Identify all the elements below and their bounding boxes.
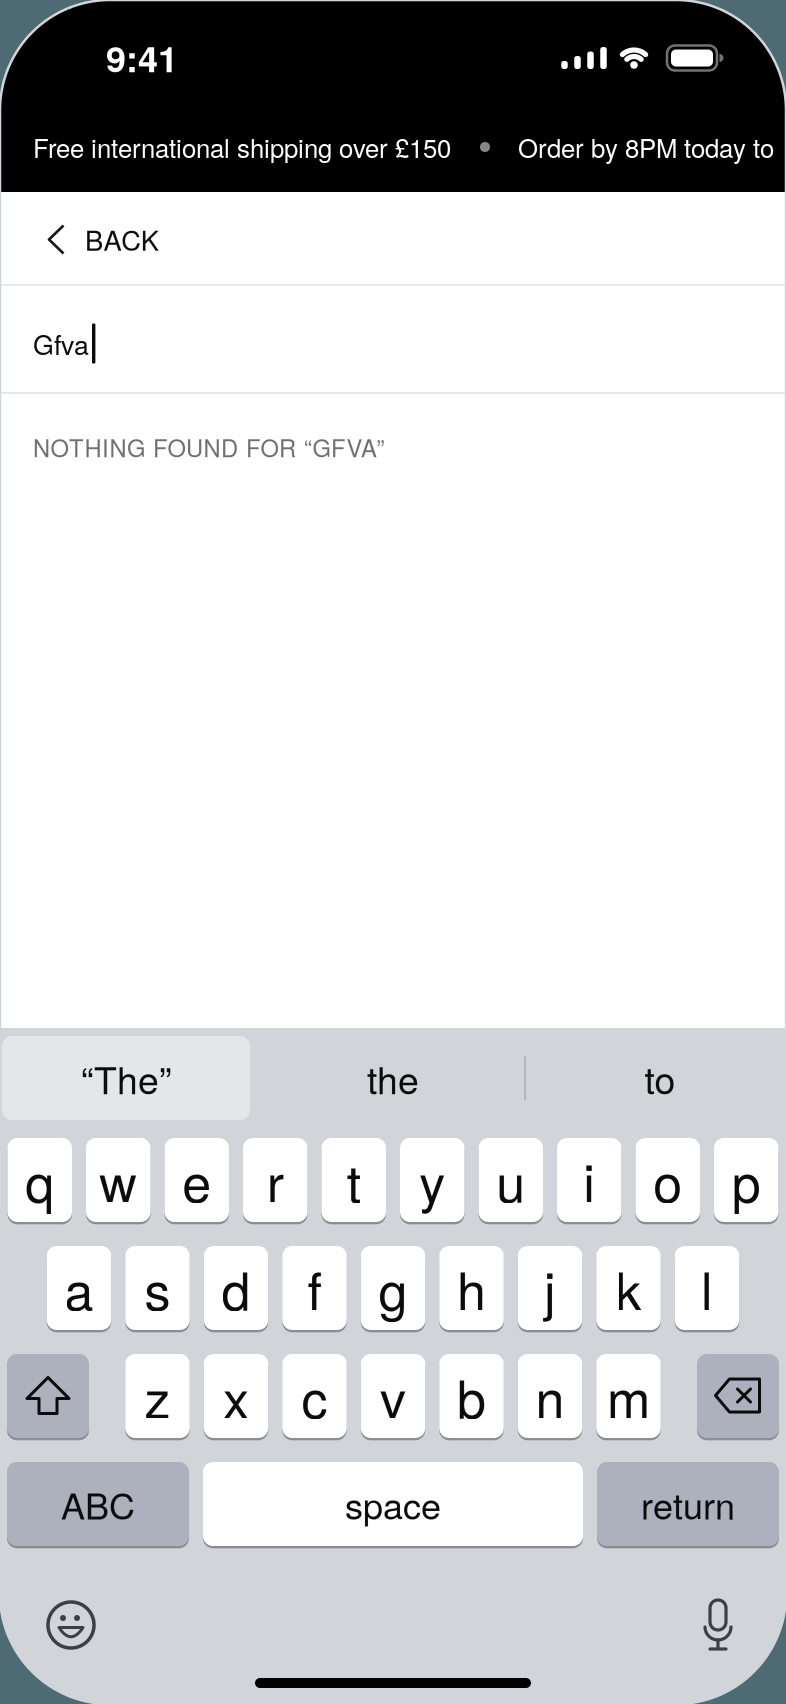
- button[interactable]: x: [204, 1354, 268, 1438]
- staticText: i: [583, 1143, 595, 1217]
- button[interactable]: g: [361, 1246, 425, 1330]
- button[interactable]: w: [86, 1138, 150, 1222]
- button[interactable]: space: [203, 1462, 583, 1546]
- staticText: d: [221, 1251, 250, 1325]
- staticText: “The”: [81, 1051, 171, 1105]
- staticText: g: [378, 1251, 407, 1325]
- staticText: Gfva: [33, 324, 89, 363]
- staticText: t: [347, 1143, 361, 1217]
- button[interactable]: o: [635, 1138, 700, 1222]
- staticText: o: [653, 1143, 682, 1217]
- button[interactable]: return: [597, 1462, 779, 1546]
- button[interactable]: y: [400, 1138, 464, 1222]
- staticText: r: [267, 1143, 284, 1217]
- button[interactable]: m: [596, 1354, 661, 1438]
- button[interactable]: k: [596, 1246, 661, 1330]
- button[interactable]: f: [282, 1246, 347, 1330]
- button[interactable]: h: [439, 1246, 504, 1330]
- button[interactable]: s: [125, 1246, 190, 1330]
- button[interactable]: Back: [0, 192, 159, 286]
- staticText: b: [457, 1359, 486, 1433]
- staticText: ABC: [61, 1478, 135, 1530]
- staticText: the: [367, 1051, 419, 1105]
- staticText: m: [607, 1359, 650, 1433]
- button[interactable]: p: [714, 1138, 778, 1222]
- staticText: to: [644, 1051, 675, 1105]
- staticText: p: [732, 1143, 761, 1217]
- button[interactable]: l: [675, 1246, 739, 1330]
- button[interactable]: “The”: [2, 1036, 250, 1120]
- staticText: h: [457, 1251, 486, 1325]
- staticText: u: [496, 1143, 525, 1217]
- button[interactable]: q: [7, 1138, 72, 1222]
- staticText: k: [615, 1251, 641, 1325]
- staticText: s: [144, 1251, 170, 1325]
- button[interactable]: ABC: [7, 1462, 189, 1546]
- button[interactable]: Delete: [697, 1354, 779, 1438]
- button[interactable]: Shift: [7, 1354, 89, 1438]
- button[interactable]: n: [518, 1354, 582, 1438]
- staticText: j: [544, 1251, 556, 1325]
- button[interactable]: t: [321, 1138, 386, 1222]
- button[interactable]: z: [125, 1354, 190, 1438]
- staticText: y: [419, 1143, 445, 1217]
- staticText: l: [701, 1251, 713, 1325]
- button[interactable]: r: [243, 1138, 307, 1222]
- staticText: NOTHING FOUND FOR “GFVA”: [33, 430, 384, 464]
- staticText: v: [380, 1359, 406, 1433]
- staticText: a: [64, 1251, 93, 1325]
- button[interactable]: Dictation: [703, 1599, 733, 1651]
- button[interactable]: to: [536, 1036, 784, 1120]
- staticText: c: [301, 1359, 327, 1433]
- button[interactable]: u: [478, 1138, 543, 1222]
- staticText: q: [25, 1143, 54, 1217]
- button[interactable]: i: [557, 1138, 621, 1222]
- button[interactable]: v: [361, 1354, 425, 1438]
- staticText: w: [99, 1143, 137, 1217]
- button[interactable]: a: [47, 1246, 111, 1330]
- button[interactable]: Emoji: [47, 1601, 95, 1649]
- staticText: 9:41: [106, 32, 178, 83]
- button[interactable]: Search field: [0, 286, 786, 394]
- staticText: x: [223, 1359, 249, 1433]
- button[interactable]: d: [204, 1246, 268, 1330]
- button[interactable]: j: [518, 1246, 582, 1330]
- button[interactable]: e: [164, 1138, 229, 1222]
- staticText: f: [307, 1251, 321, 1325]
- button[interactable]: c: [282, 1354, 347, 1438]
- staticText: space: [345, 1478, 441, 1530]
- staticText: n: [535, 1359, 564, 1433]
- button[interactable]: the: [269, 1036, 517, 1120]
- staticText: z: [144, 1359, 170, 1433]
- staticText: BACK: [85, 219, 159, 258]
- staticText: e: [182, 1143, 211, 1217]
- staticText: Order by 8PM today to: [518, 129, 774, 165]
- staticText: Free international shipping over £150: [33, 129, 451, 165]
- staticText: return: [641, 1478, 735, 1530]
- button[interactable]: b: [439, 1354, 504, 1438]
